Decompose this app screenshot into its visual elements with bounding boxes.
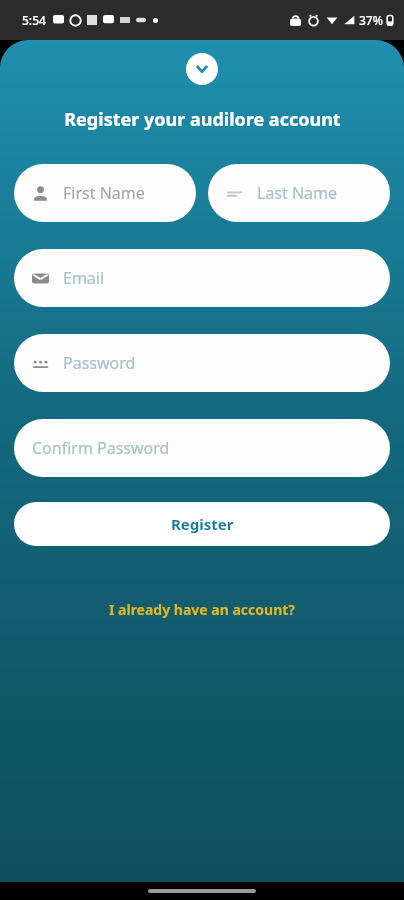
button[interactable]: I already have an account?: [99, 594, 305, 625]
button[interactable]: Collapse: [186, 53, 218, 85]
staticText: I already have an account?: [109, 600, 295, 619]
button[interactable]: Password: [14, 334, 390, 392]
staticText: Last Name: [257, 182, 338, 204]
button[interactable]: Last Name: [208, 164, 390, 222]
button[interactable]: First Name: [14, 164, 196, 222]
staticText: First Name: [63, 182, 145, 204]
staticText: 37%: [359, 12, 383, 28]
staticText: Register your audilore account: [64, 107, 341, 132]
staticText: Email: [63, 267, 105, 289]
staticText: Register: [171, 514, 234, 534]
staticText: Password: [63, 352, 136, 374]
staticText: 5:54: [22, 12, 46, 28]
button[interactable]: Confirm Password: [14, 419, 390, 477]
button[interactable]: Email: [14, 249, 390, 307]
staticText: Confirm Password: [32, 437, 170, 459]
button[interactable]: Register: [14, 502, 390, 546]
